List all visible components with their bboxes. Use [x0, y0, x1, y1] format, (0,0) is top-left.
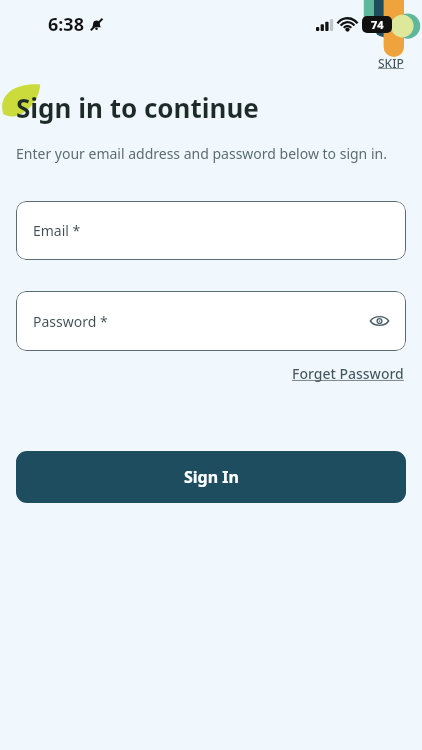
- button[interactable]: Email *: [16, 201, 406, 260]
- staticText: Sign In: [184, 466, 239, 488]
- staticText: Sign in to continue: [16, 90, 259, 125]
- staticText: Password *: [33, 312, 108, 331]
- staticText: 74: [371, 17, 384, 32]
- staticText: Forget Password: [292, 364, 404, 383]
- button[interactable]: SKIP: [376, 53, 406, 73]
- button[interactable]: Sign In: [16, 451, 406, 503]
- button[interactable]: Forget Password: [290, 362, 406, 385]
- staticText: SKIP: [378, 55, 404, 71]
- staticText: Email *: [33, 221, 81, 240]
- button[interactable]: Show password: [362, 304, 396, 338]
- button[interactable]: Password *: [16, 291, 406, 351]
- staticText: Enter your email address and password be…: [16, 144, 387, 163]
- staticText: 6:38: [48, 12, 84, 37]
